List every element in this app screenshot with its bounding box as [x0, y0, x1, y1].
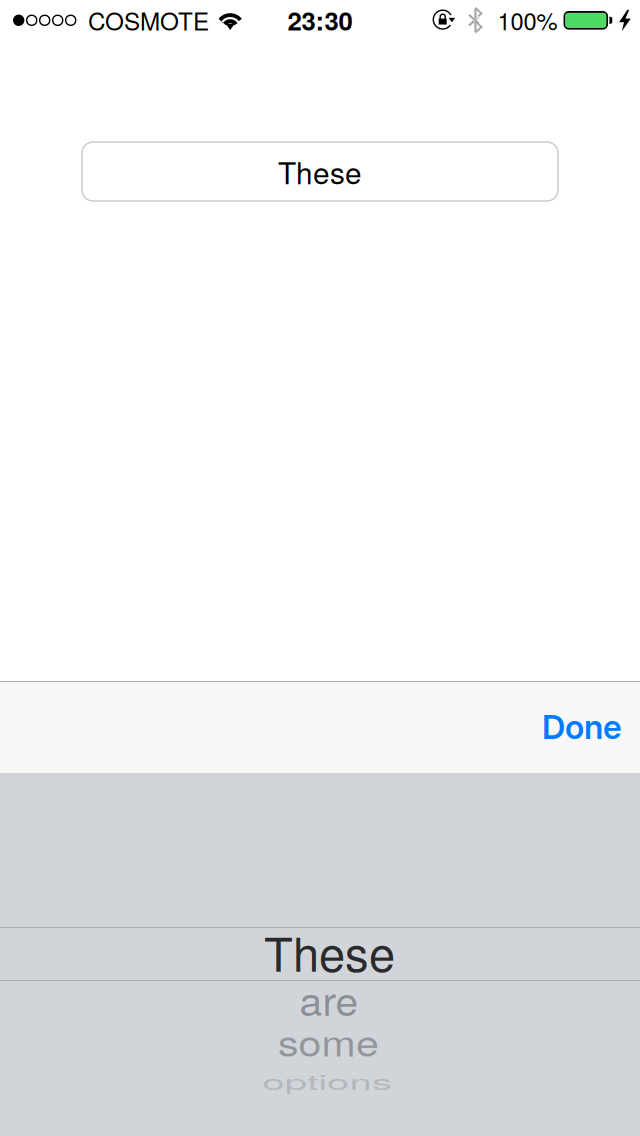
button[interactable]: These: [82, 142, 558, 201]
staticText: These: [264, 918, 395, 985]
staticText: are: [295, 966, 362, 1032]
button[interactable]: These: [9, 925, 640, 978]
button[interactable]: some: [8, 1021, 640, 1061]
staticText: These: [278, 150, 362, 193]
button[interactable]: are: [9, 976, 640, 1021]
button[interactable]: Done: [542, 681, 640, 773]
staticText: 100%: [498, 3, 558, 37]
staticText: 23:30: [287, 2, 352, 38]
staticText: Done: [542, 707, 622, 747]
button[interactable]: options: [7, 1063, 640, 1099]
staticText: options: [252, 1048, 402, 1114]
staticText: some: [271, 1008, 385, 1074]
staticText: COSMOTE: [88, 3, 209, 37]
